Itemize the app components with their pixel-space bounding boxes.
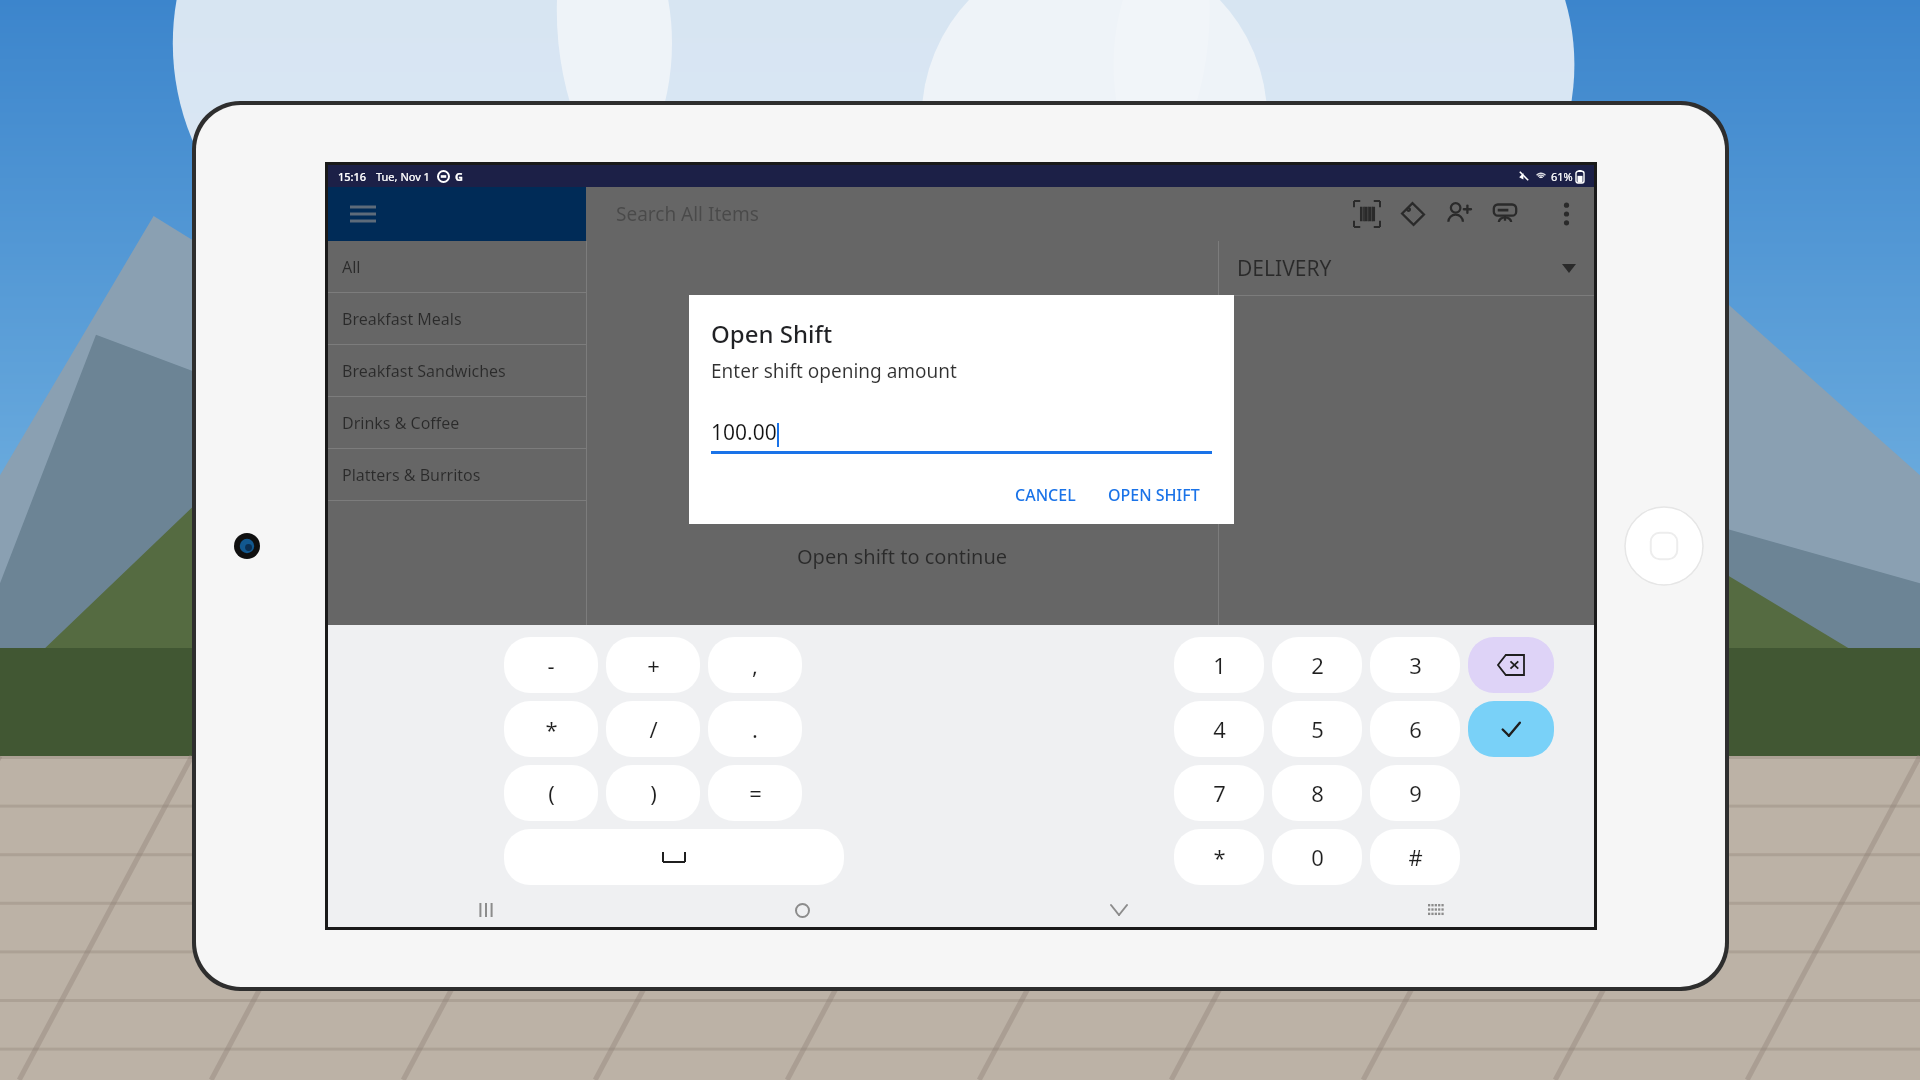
staticText: Platters & Burritos xyxy=(342,464,481,486)
button[interactable]: ) xyxy=(606,765,700,821)
staticText: All xyxy=(342,256,361,278)
button[interactable]: # xyxy=(1370,829,1460,885)
button[interactable]: . xyxy=(708,701,802,757)
staticText: Drinks & Coffee xyxy=(342,412,460,434)
button[interactable]: Discounts xyxy=(1390,191,1436,237)
button[interactable]: Change keyboard xyxy=(1277,893,1594,927)
staticText: . xyxy=(752,714,758,744)
staticText: 8 xyxy=(1311,778,1324,808)
staticText: 0 xyxy=(1311,842,1324,872)
staticText: OPEN SHIFT xyxy=(1108,484,1200,506)
staticText: ) xyxy=(650,778,657,808)
button[interactable]: = xyxy=(708,765,802,821)
staticText: Tue, Nov 1 xyxy=(376,169,430,184)
staticText: 5 xyxy=(1311,714,1324,744)
button[interactable]: 3 xyxy=(1370,637,1460,693)
staticText: * xyxy=(1213,842,1226,872)
button[interactable]: Space xyxy=(504,829,844,885)
staticText: + xyxy=(647,650,660,680)
staticText: - xyxy=(547,650,555,680)
staticText: Breakfast Meals xyxy=(342,308,462,330)
staticText: DELIVERY xyxy=(1237,254,1332,283)
button[interactable]: Recents xyxy=(328,893,644,927)
button[interactable]: Hide keyboard xyxy=(960,893,1277,927)
button[interactable]: * xyxy=(504,701,598,757)
button[interactable]: 8 xyxy=(1272,765,1362,821)
staticText: 7 xyxy=(1213,778,1226,808)
button[interactable]: Home xyxy=(644,893,960,927)
staticText: * xyxy=(545,714,558,744)
staticText: 15:16 xyxy=(338,169,367,184)
button[interactable]: 5 xyxy=(1272,701,1362,757)
button[interactable]: Scan barcode xyxy=(1344,191,1390,237)
button[interactable]: / xyxy=(606,701,700,757)
staticText: Open Shift xyxy=(711,317,833,350)
staticText: Search All Items xyxy=(616,201,759,227)
button[interactable]: + xyxy=(606,637,700,693)
staticText: ( xyxy=(548,778,555,808)
button[interactable]: 6 xyxy=(1370,701,1460,757)
staticText: # xyxy=(1408,842,1423,872)
button[interactable]: , xyxy=(708,637,802,693)
staticText: 100.00 xyxy=(711,418,777,447)
button[interactable]: Menu xyxy=(328,187,586,241)
button[interactable]: Drinks & Coffee xyxy=(328,397,586,449)
staticText: = xyxy=(749,778,762,808)
button[interactable]: CANCEL xyxy=(1003,476,1088,514)
button[interactable]: ( xyxy=(504,765,598,821)
staticText: / xyxy=(649,714,658,744)
button[interactable]: Delete xyxy=(1468,637,1554,693)
button[interactable]: DELIVERY xyxy=(1219,241,1594,295)
button[interactable]: Display xyxy=(1482,191,1528,237)
staticText: , xyxy=(752,650,758,680)
staticText: Breakfast Sandwiches xyxy=(342,360,506,382)
staticText: 2 xyxy=(1311,650,1324,680)
button[interactable]: 0 xyxy=(1272,829,1362,885)
staticText: 3 xyxy=(1409,650,1422,680)
staticText: Open shift to continue xyxy=(797,543,1008,570)
button[interactable]: All xyxy=(328,241,586,293)
button[interactable]: Platters & Burritos xyxy=(328,449,586,501)
staticText: 61% xyxy=(1551,169,1573,184)
button[interactable]: Breakfast Meals xyxy=(328,293,586,345)
button[interactable]: - xyxy=(504,637,598,693)
button[interactable]: * xyxy=(1174,829,1264,885)
button[interactable]: 1 xyxy=(1174,637,1264,693)
button[interactable]: OPEN SHIFT xyxy=(1096,476,1212,514)
button[interactable]: 4 xyxy=(1174,701,1264,757)
staticText: CANCEL xyxy=(1015,484,1076,506)
button[interactable]: Enter xyxy=(1468,701,1554,757)
staticText: Enter shift opening amount xyxy=(711,358,957,384)
button[interactable]: 9 xyxy=(1370,765,1460,821)
staticText: 6 xyxy=(1409,714,1422,744)
staticText: 4 xyxy=(1213,714,1226,744)
staticText: G xyxy=(455,169,463,184)
staticText: 9 xyxy=(1409,778,1422,808)
staticText: 1 xyxy=(1213,650,1226,680)
button[interactable]: Breakfast Sandwiches xyxy=(328,345,586,397)
button[interactable]: More options xyxy=(1546,194,1586,234)
button[interactable]: 7 xyxy=(1174,765,1264,821)
button[interactable]: 2 xyxy=(1272,637,1362,693)
button[interactable]: Add customer xyxy=(1436,191,1482,237)
